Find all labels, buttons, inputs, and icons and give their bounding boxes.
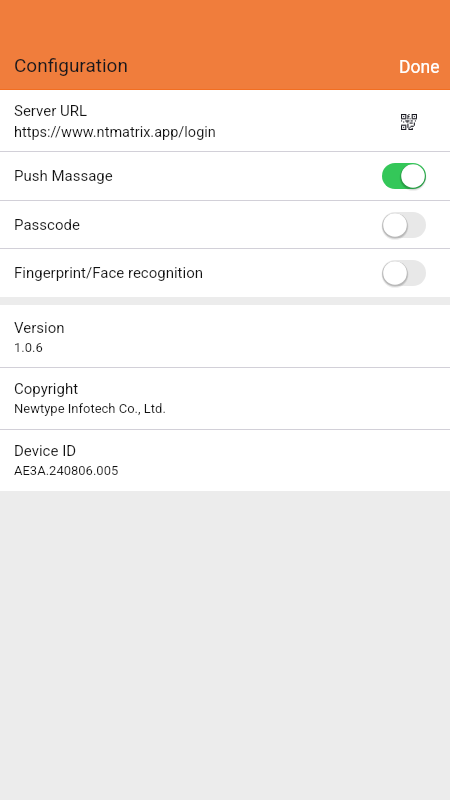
- button[interactable]: Push Massage: [0, 152, 450, 200]
- staticText: Newtype Infotech Co., Ltd.: [14, 401, 166, 416]
- staticText: https://www.ntmatrix.app/login: [14, 124, 216, 141]
- button[interactable]: Toggle off: [382, 212, 426, 238]
- staticText: Configuration: [14, 54, 128, 76]
- button[interactable]: Device ID: [0, 430, 450, 491]
- staticText: Copyright: [14, 380, 79, 398]
- button[interactable]: Toggle off: [382, 260, 426, 286]
- staticText: Server URL: [14, 102, 88, 120]
- button[interactable]: Scan QR code: [394, 107, 424, 137]
- staticText: AE3A.240806.005: [14, 463, 119, 478]
- staticText: Device ID: [14, 442, 77, 460]
- staticText: Done: [399, 57, 440, 78]
- button[interactable]: Server URL: [0, 90, 450, 151]
- button[interactable]: Copyright: [0, 368, 450, 429]
- button[interactable]: Version: [0, 305, 450, 367]
- staticText: Fingerprint/Face recognition: [14, 264, 382, 282]
- staticText: Push Massage: [14, 167, 382, 185]
- button[interactable]: Fingerprint/Face recognition: [0, 249, 450, 297]
- button[interactable]: Done: [381, 0, 450, 83]
- staticText: Version: [14, 319, 65, 337]
- button[interactable]: Passcode: [0, 201, 450, 248]
- staticText: 1.0.6: [14, 340, 43, 355]
- button[interactable]: Toggle on: [382, 163, 426, 189]
- staticText: Passcode: [14, 216, 382, 234]
